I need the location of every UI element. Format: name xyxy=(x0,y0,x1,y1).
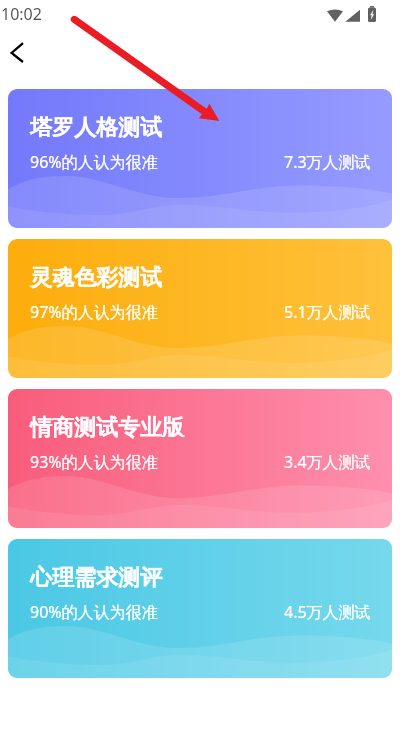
staticText: 塔罗人格测试 xyxy=(30,114,162,142)
staticText: 情商测试专业版 xyxy=(30,414,184,442)
button[interactable]: 塔罗人格测试 xyxy=(8,89,392,228)
staticText: 97%的人认为很准 xyxy=(30,301,158,323)
button[interactable]: 心理需求测评 xyxy=(8,539,392,678)
button[interactable]: Back xyxy=(0,33,40,73)
staticText: 5.1万人测试 xyxy=(284,301,371,323)
staticText: 灵魂色彩测试 xyxy=(30,264,162,292)
button[interactable]: 情商测试专业版 xyxy=(8,389,392,528)
staticText: 96%的人认为很准 xyxy=(30,151,158,173)
staticText: 心理需求测评 xyxy=(30,564,162,592)
staticText: 10:02 xyxy=(1,3,42,25)
staticText: 7.3万人测试 xyxy=(284,151,371,173)
staticText: 90%的人认为很准 xyxy=(30,601,158,623)
button[interactable]: 灵魂色彩测试 xyxy=(8,239,392,378)
staticText: 93%的人认为很准 xyxy=(30,451,158,473)
staticText: 4.5万人测试 xyxy=(284,601,371,623)
staticText: 3.4万人测试 xyxy=(284,451,371,473)
